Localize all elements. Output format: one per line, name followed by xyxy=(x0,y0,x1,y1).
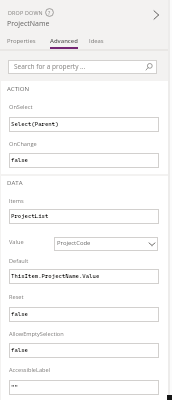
staticText: ThisItem.ProjectName.Value xyxy=(11,273,100,280)
staticText: Items xyxy=(9,197,24,205)
staticText: false xyxy=(11,347,28,354)
button[interactable]: false xyxy=(9,343,159,358)
staticText: DROP DOWN xyxy=(8,9,43,16)
button[interactable]: Ideas xyxy=(85,34,107,49)
staticText: Select(Parent) xyxy=(11,121,59,128)
staticText: "" xyxy=(11,384,18,391)
staticText: AllowEmptySelection xyxy=(9,330,64,338)
staticText: ProjectList xyxy=(11,213,49,220)
button[interactable]: ProjectList xyxy=(9,209,159,224)
staticText: OnChange xyxy=(9,140,37,148)
staticText: false xyxy=(11,157,28,164)
button[interactable]: Search for a property ... xyxy=(8,60,157,74)
button[interactable]: false xyxy=(9,153,159,168)
staticText: Reset xyxy=(9,293,24,301)
staticText: ? xyxy=(48,9,51,16)
button[interactable]: Select(Parent) xyxy=(9,117,159,132)
button[interactable]: Advanced xyxy=(48,34,80,49)
staticText: Search for a property ... xyxy=(14,62,86,71)
staticText: ProjectCode xyxy=(57,239,91,247)
staticText: Ideas xyxy=(89,37,104,45)
staticText: Value xyxy=(9,238,24,246)
staticText: ACTION xyxy=(7,84,30,92)
staticText: OnSelect xyxy=(9,103,33,111)
staticText: false xyxy=(11,311,28,318)
staticText: DATA xyxy=(7,178,23,186)
button[interactable]: Expand xyxy=(148,7,164,23)
staticText: Advanced xyxy=(50,37,78,45)
staticText: ProjectName xyxy=(7,19,50,29)
button[interactable]: ThisItem.ProjectName.Value xyxy=(9,269,159,284)
staticText: AccessibleLabel xyxy=(9,366,51,374)
staticText: Properties xyxy=(7,37,36,45)
staticText: Default xyxy=(9,257,29,265)
button[interactable]: ProjectCode xyxy=(54,237,158,251)
button[interactable]: false xyxy=(9,307,159,322)
button[interactable]: Help xyxy=(45,8,54,17)
button[interactable]: "" xyxy=(9,380,159,395)
button[interactable]: Properties xyxy=(3,34,40,49)
